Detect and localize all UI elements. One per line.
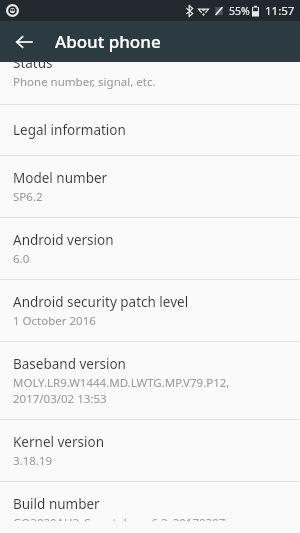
- button[interactable]: Android security patch level: [0, 280, 300, 341]
- button[interactable]: Legal information: [0, 105, 300, 155]
- button[interactable]: Baseband version: [0, 342, 300, 419]
- button[interactable]: Status: [0, 62, 300, 104]
- staticText: SP6.2: [13, 189, 43, 205]
- staticText: Build number: [13, 495, 100, 513]
- staticText: Android security patch level: [13, 293, 189, 311]
- button[interactable]: Model number: [0, 156, 300, 217]
- staticText: Baseband version: [13, 355, 126, 373]
- staticText: Status: [13, 62, 53, 72]
- button[interactable]: Back: [6, 24, 42, 60]
- staticText: 3.18.19: [13, 453, 53, 469]
- staticText: 2017/03/02 13:53: [13, 391, 107, 407]
- button[interactable]: Android version: [0, 218, 300, 279]
- staticText: 1 October 2016: [13, 313, 96, 329]
- staticText: Phone number, signal, etc.: [13, 74, 156, 90]
- staticText: 6.0: [13, 251, 30, 267]
- staticText: Android version: [13, 231, 114, 249]
- button[interactable]: Kernel version: [0, 420, 300, 481]
- staticText: About phone: [55, 30, 161, 53]
- staticText: Model number: [13, 169, 108, 187]
- staticText: 11:57: [265, 3, 295, 19]
- staticText: Kernel version: [13, 433, 105, 451]
- staticText: Legal information: [13, 121, 126, 139]
- staticText: 55%: [229, 4, 250, 18]
- staticText: GQ3030AH2_Smartphone6.2_20170307: [13, 515, 226, 521]
- button[interactable]: Build number: [0, 482, 300, 533]
- staticText: MOLY.LR9.W1444.MD.LWTG.MP.V79.P12,: [13, 375, 230, 391]
